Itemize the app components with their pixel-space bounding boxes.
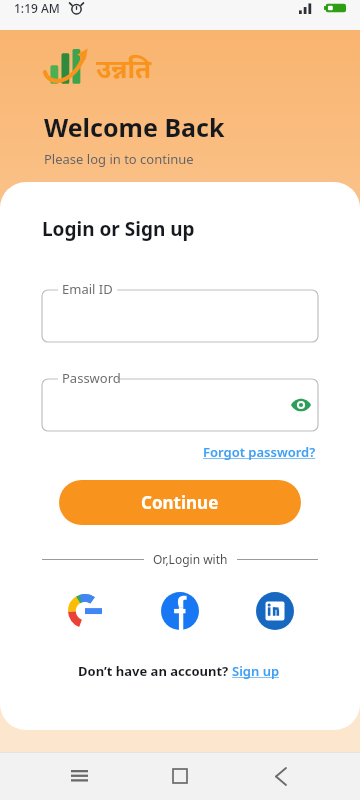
staticText: Don’t have an account? — [78, 662, 232, 680]
staticText: Sign up — [232, 662, 283, 680]
button[interactable]: Forgot password? — [201, 441, 318, 463]
button[interactable]: Sign up — [232, 662, 283, 680]
staticText: Welcome Back — [44, 110, 225, 144]
staticText: Or,Login with — [153, 551, 228, 567]
staticText: Continue — [141, 491, 219, 514]
staticText: 1:19 AM — [14, 0, 60, 16]
button[interactable] — [42, 290, 318, 342]
button[interactable]: Sign in with LinkedIn — [252, 588, 298, 634]
staticText: Login or Sign up — [42, 216, 195, 242]
button[interactable]: Back — [259, 754, 303, 798]
button[interactable]: Toggle password visibility — [284, 388, 318, 422]
button[interactable]: Home — [158, 754, 202, 798]
button[interactable]: Recents — [57, 754, 101, 798]
button[interactable]: Sign in with Facebook — [157, 588, 203, 634]
staticText: Password — [62, 369, 121, 387]
staticText: Email ID — [62, 280, 113, 298]
staticText: उन्नति — [96, 50, 152, 85]
staticText: Forgot password? — [203, 443, 316, 461]
button[interactable]: Sign in with Google — [62, 588, 108, 634]
button[interactable] — [42, 379, 318, 431]
staticText: Please log in to continue — [44, 150, 194, 168]
button[interactable]: Continue — [59, 480, 301, 525]
